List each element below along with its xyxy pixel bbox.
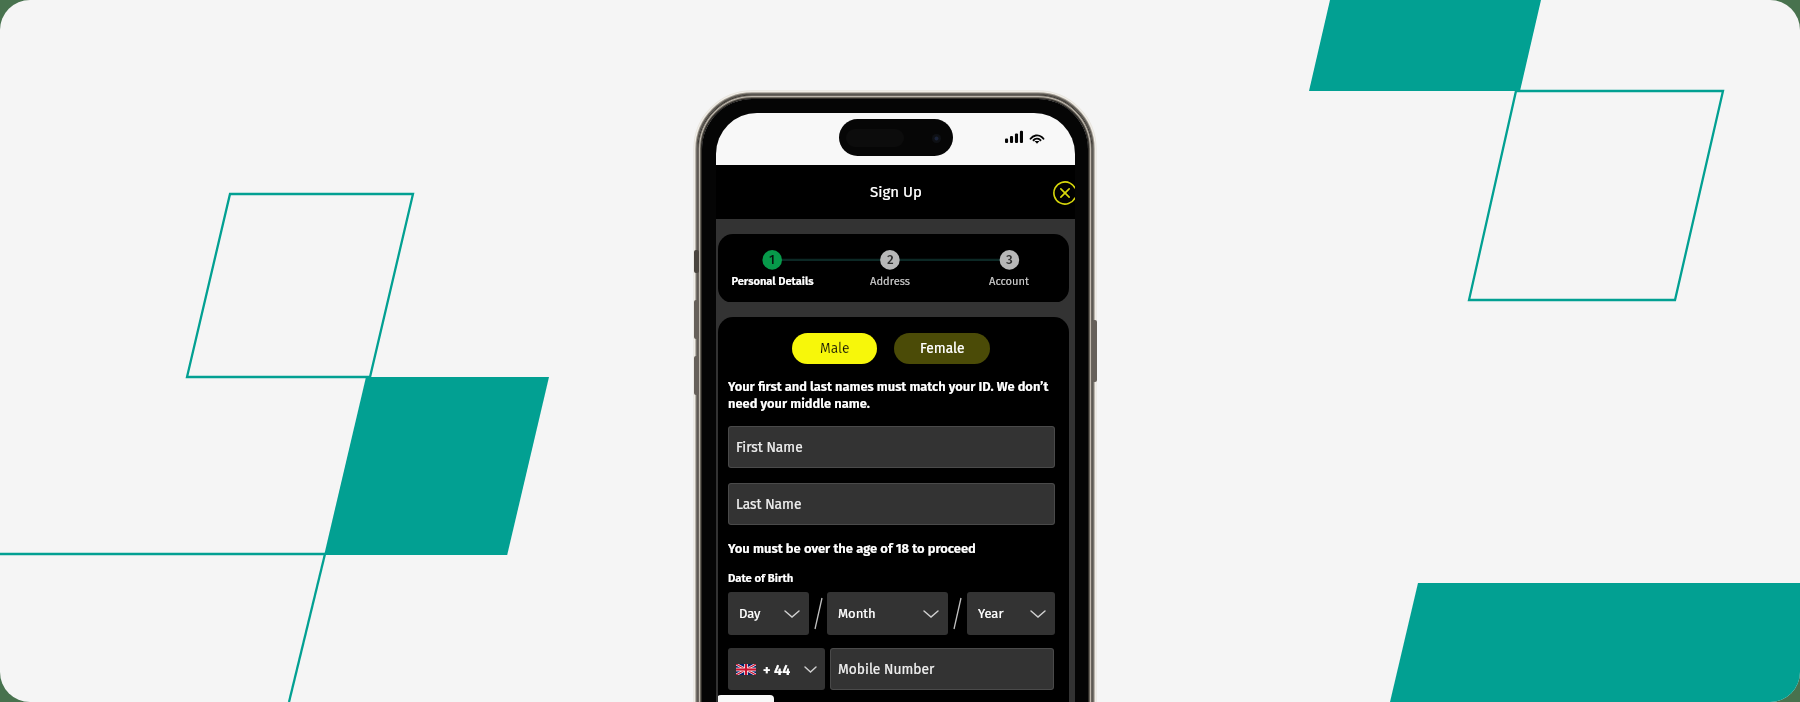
- staticText: First Name: [736, 439, 803, 456]
- staticText: Account: [989, 275, 1029, 288]
- staticText: Address: [870, 275, 910, 288]
- button[interactable]: Year: [967, 592, 1055, 635]
- button[interactable]: Female: [894, 333, 990, 364]
- staticText: 3: [1006, 252, 1013, 268]
- staticText: Year: [978, 606, 1004, 622]
- staticText: Day: [739, 606, 761, 622]
- button[interactable]: Country code plus 44: [728, 648, 825, 690]
- staticText: Personal Details: [731, 275, 814, 288]
- staticText: Mobile Number: [838, 661, 935, 678]
- staticText: Month: [838, 606, 876, 622]
- staticText: Female: [920, 340, 965, 357]
- staticText: You must be over the age of 18 to procee…: [728, 541, 976, 557]
- button[interactable]: Close: [1051, 179, 1075, 207]
- staticText: 1: [769, 252, 775, 268]
- staticText: Date of Birth: [728, 571, 794, 585]
- button[interactable]: Male: [792, 333, 877, 364]
- button[interactable]: Month: [827, 592, 948, 635]
- button[interactable]: Last Name: [728, 483, 1055, 525]
- button[interactable]: Day: [728, 592, 809, 635]
- staticText: Last Name: [736, 496, 802, 513]
- staticText: + 44: [763, 661, 791, 678]
- staticText: Sign Up: [870, 183, 922, 201]
- staticText: Male: [820, 340, 850, 357]
- button[interactable]: First Name: [728, 426, 1055, 468]
- staticText: Your first and last names must match you…: [728, 379, 1058, 411]
- staticText: 2: [887, 252, 894, 268]
- button[interactable]: Mobile Number: [830, 648, 1054, 690]
